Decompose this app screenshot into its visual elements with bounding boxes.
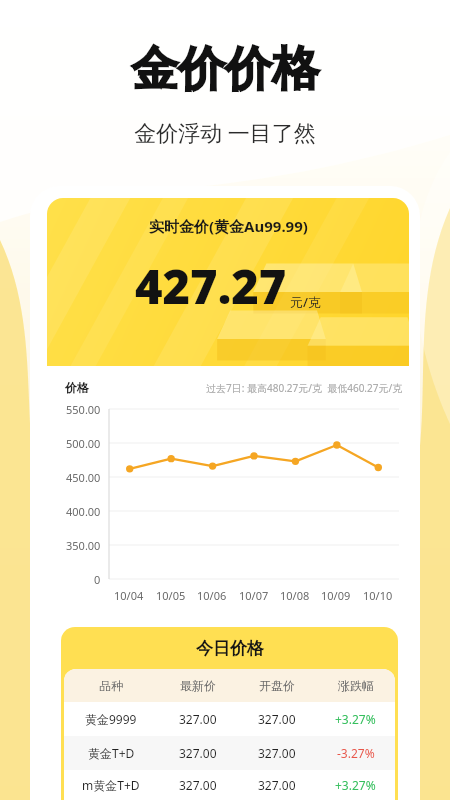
staticText: 327.00 <box>179 777 217 793</box>
staticText: 10/05 <box>156 588 186 603</box>
button[interactable]: 黄金9999 <box>64 702 395 736</box>
staticText: -3.27% <box>337 745 375 761</box>
staticText: 327.00 <box>258 711 296 727</box>
staticText: 350.00 <box>66 538 101 553</box>
staticText: 500.00 <box>66 436 101 451</box>
button[interactable]: 实时金价(黄金Au99.99) <box>47 198 409 366</box>
staticText: 涨跌幅 <box>338 678 374 693</box>
staticText: +3.27% <box>335 711 376 727</box>
staticText: 金价价格 <box>131 40 319 99</box>
staticText: 最新价 <box>180 678 216 693</box>
staticText: 327.00 <box>258 777 296 793</box>
staticText: 327.00 <box>258 745 296 761</box>
staticText: 10/07 <box>239 588 269 603</box>
staticText: 10/04 <box>114 588 144 603</box>
staticText: 400.00 <box>66 504 101 519</box>
staticText: 开盘价 <box>259 678 295 693</box>
staticText: 327.00 <box>179 711 217 727</box>
staticText: 10/06 <box>197 588 227 603</box>
staticText: 品种 <box>99 678 123 693</box>
staticText: 黄金9999 <box>85 711 137 727</box>
staticText: 550.00 <box>66 402 101 417</box>
staticText: 0 <box>94 572 101 587</box>
staticText: +3.27% <box>335 777 376 793</box>
staticText: 10/08 <box>280 588 310 603</box>
staticText: 价格 <box>65 380 89 395</box>
staticText: 过去7日: 最高480.27元/克 最低460.27元/克 <box>206 381 403 395</box>
button[interactable]: 黄金T+D <box>64 736 395 770</box>
staticText: 今日价格 <box>196 638 264 659</box>
staticText: 金价浮动 一目了然 <box>134 117 316 147</box>
staticText: 327.00 <box>179 745 217 761</box>
staticText: m黄金T+D <box>82 777 140 793</box>
staticText: 黄金T+D <box>88 745 135 761</box>
staticText: 450.00 <box>66 470 101 485</box>
staticText: 427.27 <box>135 254 287 318</box>
staticText: 10/10 <box>363 588 393 603</box>
staticText: 10/09 <box>321 588 351 603</box>
button[interactable]: m黄金T+D <box>64 770 395 800</box>
staticText: 实时金价(黄金Au99.99) <box>149 216 308 236</box>
staticText: 元/克 <box>290 293 322 311</box>
